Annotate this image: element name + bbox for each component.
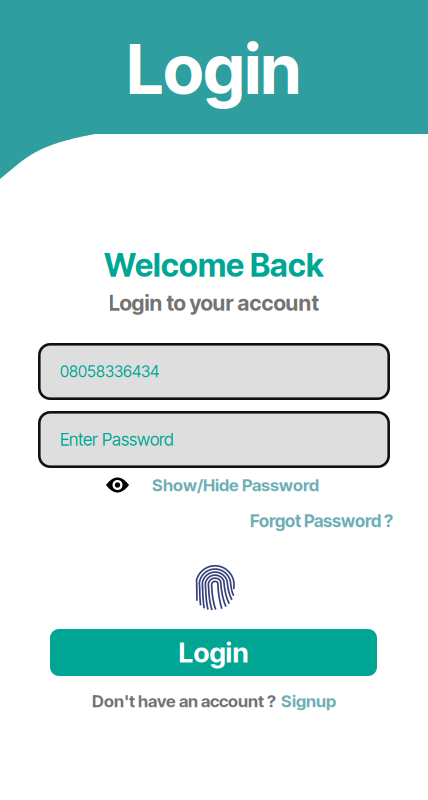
staticText: Show/Hide Password — [152, 475, 319, 495]
staticText: Don't have an account ? — [92, 691, 276, 711]
staticText: Login — [126, 27, 301, 110]
staticText: 08058336434 — [60, 362, 159, 381]
staticText: Forgot Password ? — [250, 511, 393, 531]
button[interactable]: Login — [0, 0, 327, 47]
staticText: Login — [178, 636, 248, 669]
staticText: Login to your account — [108, 290, 319, 316]
staticText: Signup — [281, 691, 336, 711]
staticText: Enter Password — [60, 429, 174, 450]
staticText: Welcome Back — [104, 246, 324, 284]
button[interactable]: Signup — [281, 691, 336, 711]
